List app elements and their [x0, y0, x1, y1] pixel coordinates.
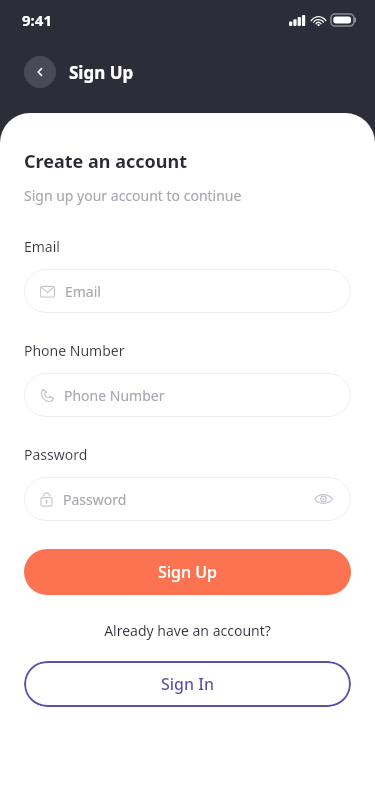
button[interactable]: Back	[24, 56, 56, 88]
staticText: Sign up your account to continue	[24, 186, 242, 205]
staticText: Phone Number	[64, 386, 165, 405]
button[interactable]: Show password	[311, 487, 335, 511]
staticText: Password	[63, 490, 127, 509]
staticText: Already have an account?	[104, 621, 271, 640]
staticText: Sign Up	[158, 561, 217, 583]
staticText: Password	[24, 445, 88, 464]
staticText: Phone Number	[24, 341, 125, 360]
button[interactable]: Sign Up	[24, 549, 351, 595]
staticText: Sign In	[161, 673, 214, 695]
button[interactable]: Phone Number	[24, 373, 351, 417]
staticText: Sign Up	[69, 61, 134, 84]
staticText: Email	[65, 282, 101, 301]
button[interactable]: Password	[24, 477, 351, 521]
staticText: Email	[24, 237, 60, 256]
staticText: Create an account	[24, 149, 187, 174]
button[interactable]: Email	[24, 269, 351, 313]
staticText: 9:41	[22, 10, 52, 30]
button[interactable]: Sign In	[24, 661, 351, 707]
